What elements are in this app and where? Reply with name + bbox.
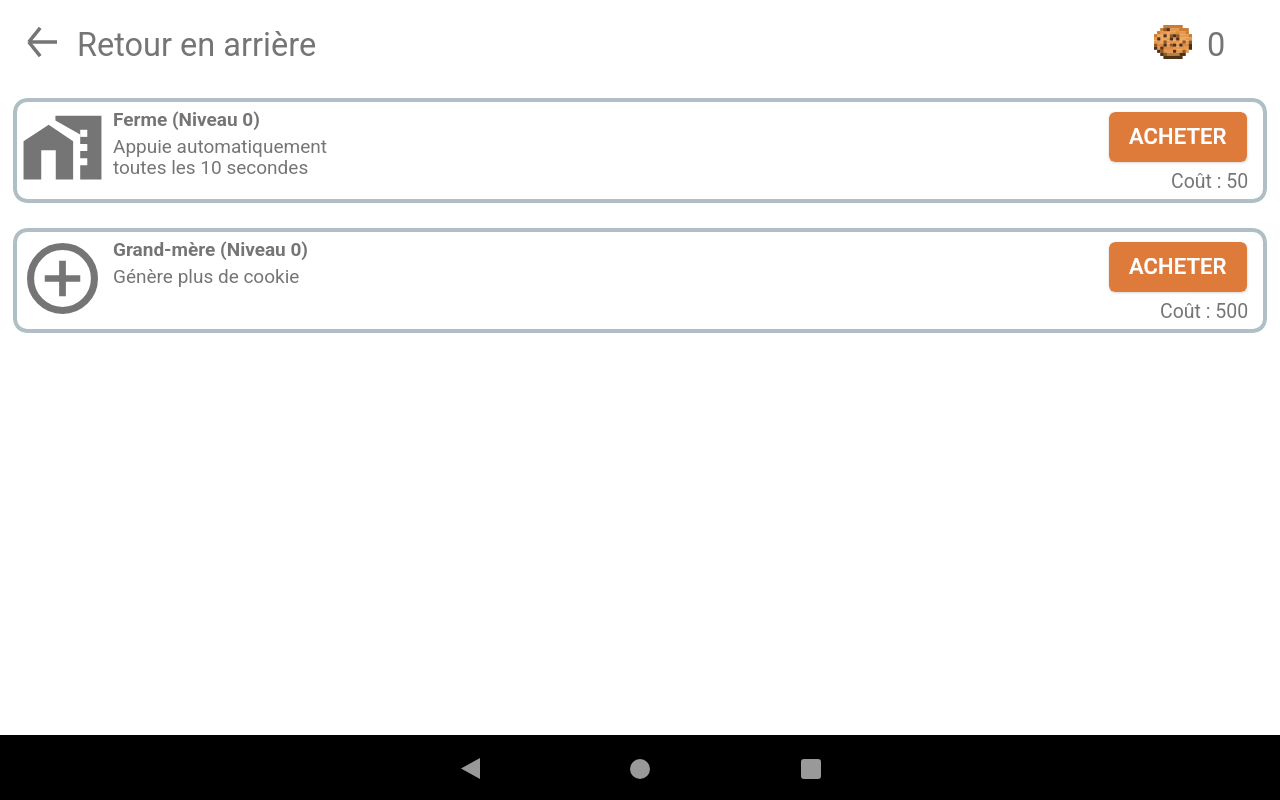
- staticText: Coût : 500: [1160, 300, 1249, 323]
- button[interactable]: Home: [604, 742, 676, 795]
- staticText: ACHETER: [1129, 124, 1227, 150]
- staticText: Génère plus de cookie: [113, 265, 300, 287]
- button[interactable]: ACHETER: [1109, 112, 1247, 162]
- staticText: Retour en arrière: [77, 26, 317, 64]
- staticText: Appuie automatiquement toutes les 10 sec…: [113, 135, 327, 178]
- staticText: ACHETER: [1129, 254, 1227, 280]
- staticText: Grand-mère (Niveau 0): [113, 238, 309, 260]
- button[interactable]: Retour: [18, 18, 66, 66]
- staticText: Coût : 50: [1171, 170, 1249, 193]
- button[interactable]: ACHETER: [1109, 242, 1247, 292]
- button[interactable]: Grand-mère (Niveau 0): [13, 228, 1267, 333]
- staticText: Ferme (Niveau 0): [113, 108, 260, 130]
- staticText: 0: [1207, 26, 1226, 64]
- button[interactable]: Back: [434, 742, 506, 795]
- button[interactable]: Ferme (Niveau 0): [13, 98, 1267, 203]
- button[interactable]: Recents: [775, 742, 847, 795]
